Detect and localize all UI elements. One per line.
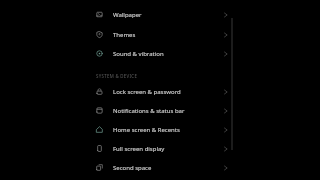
other: Open [224,146,228,152]
staticText: Sound & vibration [113,50,164,58]
staticText: SYSTEM & DEVICE [96,73,138,79]
staticText: Full screen display [113,145,165,153]
staticText: Notifications & status bar [113,107,185,115]
button[interactable]: Lock screen & password [88,82,233,101]
button[interactable]: Notifications & status bar [88,101,233,120]
button[interactable]: Sound & vibration [88,44,233,63]
staticText: Themes [113,31,136,39]
button[interactable]: Full screen display [88,139,233,158]
staticText: Home screen & Recents [113,126,180,134]
other: Open [224,32,228,38]
button[interactable]: Themes [88,25,233,44]
other: Open [224,165,228,171]
button[interactable]: Wallpaper [88,5,233,24]
other: Open [224,89,228,95]
staticText: Second space [113,164,152,172]
other: Open [224,108,228,114]
other: Open [224,12,228,18]
other: Open [224,51,228,57]
other: Open [224,127,228,133]
staticText: Wallpaper [113,11,142,19]
button[interactable]: Second space [88,158,233,177]
button[interactable]: Home screen & Recents [88,120,233,139]
staticText: Lock screen & password [113,88,181,96]
